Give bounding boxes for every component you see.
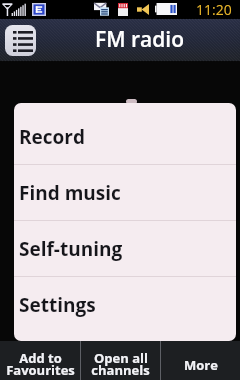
staticText: More (184, 356, 218, 374)
staticText: Add to (19, 349, 62, 367)
button[interactable]: More (161, 341, 240, 380)
staticText: Self-tuning (19, 236, 123, 262)
button[interactable]: Station list (5, 25, 36, 56)
staticText: Favourites (6, 361, 75, 379)
button[interactable]: Add to (0, 341, 80, 380)
staticText: Open all (94, 349, 148, 367)
staticText: channels (91, 361, 150, 379)
button[interactable]: Open all (81, 341, 160, 380)
staticText: Find music (19, 180, 121, 206)
staticText: Record (19, 124, 85, 150)
button[interactable]: Find music (14, 165, 236, 221)
staticText: 11:20 (196, 0, 232, 19)
button[interactable]: Record (14, 109, 236, 165)
button[interactable]: Settings (14, 277, 236, 333)
staticText: Settings (19, 292, 96, 318)
staticText: FM radio (95, 25, 184, 54)
button[interactable]: Self-tuning (14, 221, 236, 277)
